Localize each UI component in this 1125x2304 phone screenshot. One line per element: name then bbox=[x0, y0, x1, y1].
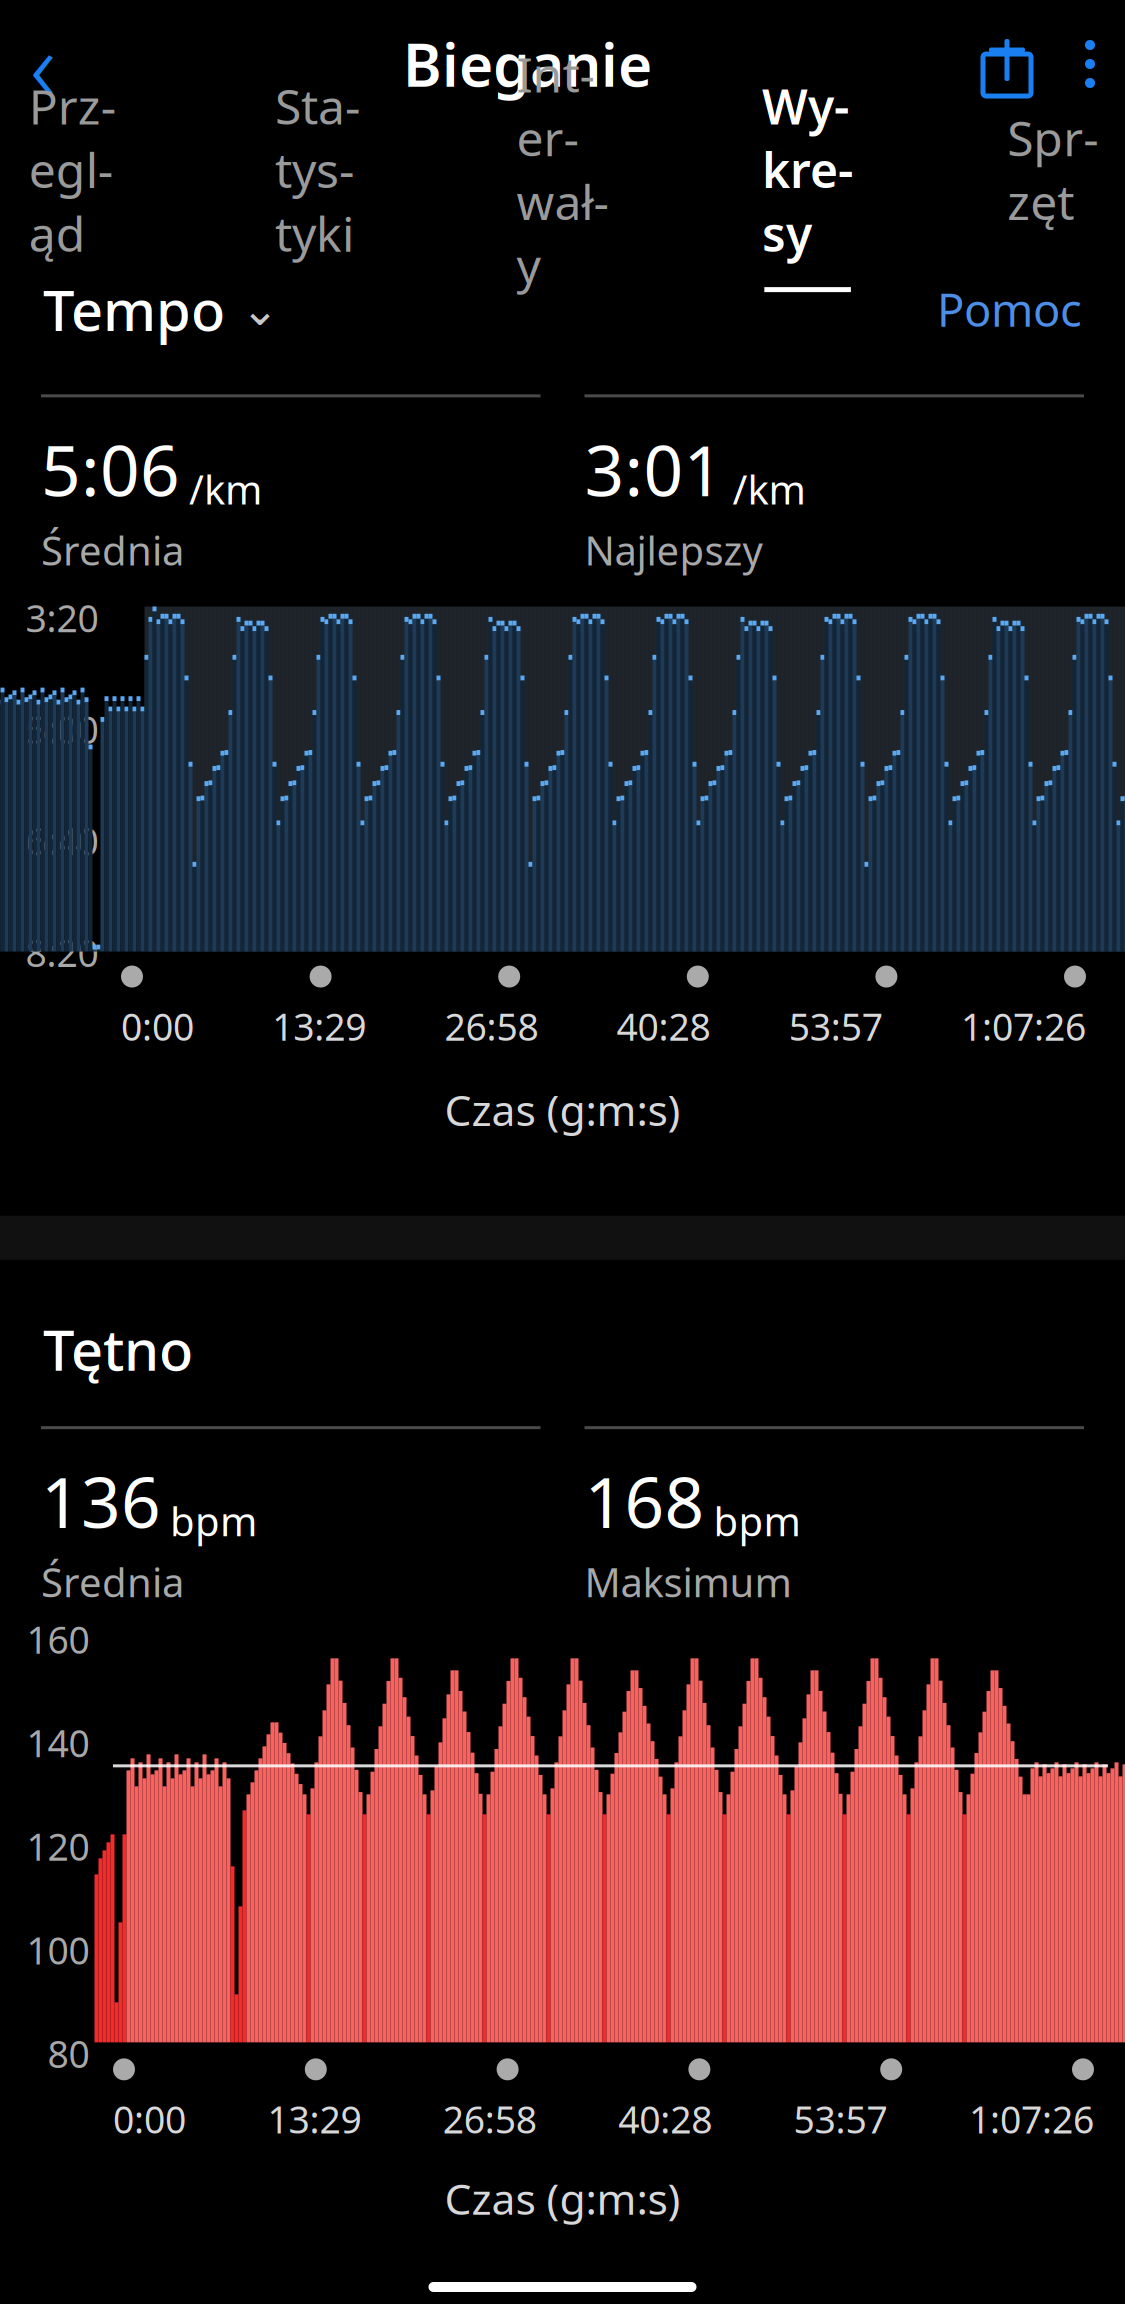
staticText: 0:00 bbox=[113, 2094, 186, 2144]
staticText: Maksimum bbox=[584, 1555, 791, 1608]
staticText: bpm bbox=[713, 1494, 800, 1547]
button[interactable]: Interwały bbox=[501, 142, 624, 224]
staticText: 5:06 bbox=[41, 423, 180, 515]
button[interactable]: Sprzęt bbox=[991, 142, 1114, 224]
staticText: 8:20 bbox=[25, 928, 98, 977]
staticText: 168 bbox=[584, 1455, 704, 1547]
staticText: 160 bbox=[26, 1614, 89, 1664]
button[interactable]: Przegląd bbox=[11, 142, 134, 224]
staticText: 1:07:26 bbox=[961, 1002, 1086, 1051]
staticText: Średnia bbox=[41, 523, 184, 576]
staticText: /km bbox=[189, 462, 262, 515]
staticText: /km bbox=[732, 462, 805, 515]
button[interactable]: More options bbox=[1050, 18, 1125, 110]
staticText: Tętno bbox=[43, 1312, 193, 1386]
staticText: 53:57 bbox=[794, 2094, 888, 2144]
staticText: 13:29 bbox=[267, 2094, 361, 2144]
staticText: bpm bbox=[170, 1494, 257, 1547]
staticText: 136 bbox=[41, 1455, 161, 1547]
staticText: 0:00 bbox=[121, 1002, 194, 1051]
staticText: 1:07:26 bbox=[969, 2094, 1094, 2144]
button[interactable]: Wykresy bbox=[746, 142, 869, 224]
staticText: 13:29 bbox=[272, 1002, 366, 1051]
staticText: 120 bbox=[26, 1822, 89, 1871]
button[interactable]: Tempo bbox=[43, 260, 279, 358]
staticText: ‹ bbox=[30, 0, 56, 129]
staticText: 80 bbox=[47, 2029, 89, 2078]
staticText: Statystyki bbox=[275, 74, 360, 265]
staticText: 40:28 bbox=[618, 2094, 712, 2144]
staticText: Przegląd bbox=[29, 74, 116, 265]
staticText: ⌄ bbox=[241, 283, 279, 335]
staticText: 5:00 bbox=[25, 704, 98, 754]
staticText: Interwały bbox=[516, 42, 608, 297]
staticText: Sprzęt bbox=[1007, 106, 1098, 233]
staticText: Pomoc bbox=[937, 279, 1082, 339]
button[interactable]: Statystyki bbox=[256, 142, 379, 224]
staticText: Tempo bbox=[43, 272, 225, 346]
button[interactable]: Back bbox=[0, 18, 91, 110]
staticText: Czas (g:m:s) bbox=[444, 1081, 680, 1138]
staticText: 26:58 bbox=[443, 2094, 537, 2144]
staticText: Czas (g:m:s) bbox=[444, 2170, 680, 2227]
button[interactable]: Pomoc bbox=[937, 267, 1082, 351]
staticText: 3:01 bbox=[584, 423, 723, 515]
staticText: 26:58 bbox=[444, 1002, 538, 1051]
staticText: Bieganie bbox=[403, 25, 652, 103]
staticText: Najlepszy bbox=[584, 523, 762, 576]
staticText: 100 bbox=[26, 1925, 89, 1975]
staticText: 6:40 bbox=[25, 816, 98, 866]
staticText: 40:28 bbox=[617, 1002, 711, 1051]
staticText: 140 bbox=[26, 1718, 89, 1768]
staticText: 53:57 bbox=[789, 1002, 883, 1051]
staticText: 3:20 bbox=[25, 593, 98, 642]
staticText: Wykresy bbox=[762, 74, 853, 265]
button[interactable]: Share bbox=[964, 18, 1050, 110]
staticText: Średnia bbox=[41, 1555, 184, 1608]
